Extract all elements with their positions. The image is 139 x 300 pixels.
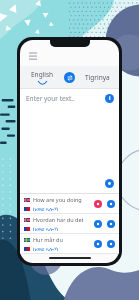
staticText: ከመይ ኣሎኻ [33,245,59,252]
button[interactable]: Swap languages [64,72,75,83]
button[interactable]: Info [105,94,114,103]
button[interactable]: Share [107,240,115,248]
staticText: How are you doing [33,196,82,203]
staticText: Hvordan har du det [33,216,84,223]
button[interactable]: Hur mår du [20,234,119,253]
button[interactable]: Favourite [94,240,102,248]
staticText: i [109,95,111,102]
staticText: English [31,70,54,79]
button[interactable]: Favourite [94,200,102,208]
button[interactable]: Favourite [94,220,102,228]
staticText: ከመይ ኣሎኻ [33,205,59,212]
staticText: ከመይ ኣሎኻ [33,225,59,232]
staticText: Enter your text.. [26,94,105,103]
button[interactable]: Menu [27,51,39,63]
button[interactable]: Tigrinya [75,66,119,88]
staticText: Hur mår du [33,236,63,243]
button[interactable]: How are you doing [20,194,119,213]
staticText: Tigrinya [85,73,110,82]
button[interactable]: Share [107,220,115,228]
button[interactable]: Share [107,200,115,208]
button[interactable]: English [20,66,64,88]
button[interactable]: Translate [105,179,114,188]
button[interactable]: Hvordan har du det [20,214,119,233]
